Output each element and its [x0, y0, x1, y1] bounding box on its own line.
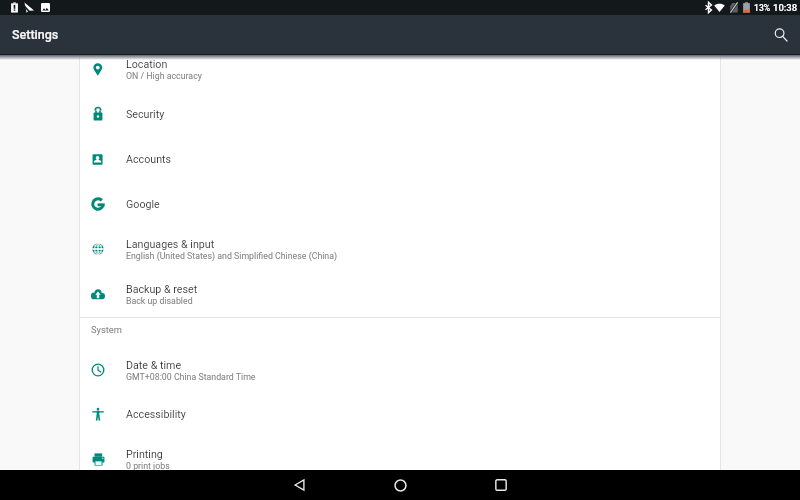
button[interactable]: Printing — [80, 437, 720, 481]
button[interactable]: Security — [80, 92, 720, 136]
staticText: Languages & input — [126, 238, 215, 251]
staticText: ON / High accuracy — [126, 71, 202, 81]
staticText: Backup & reset — [126, 283, 198, 296]
staticText: English (United States) and Simplified C… — [126, 251, 338, 261]
button[interactable]: Recents — [486, 470, 516, 500]
staticText: Google — [126, 198, 160, 211]
staticText: Printing — [126, 448, 163, 461]
staticText: Back up disabled — [126, 296, 193, 306]
button[interactable]: Location — [80, 47, 720, 91]
staticText: Security — [126, 108, 165, 121]
button[interactable]: Search — [765, 20, 795, 50]
staticText: 13% — [754, 3, 771, 13]
staticText: System — [91, 324, 122, 335]
staticText: Date & time — [126, 359, 182, 372]
button[interactable]: Back — [284, 470, 314, 500]
button[interactable]: Home — [385, 470, 415, 500]
button[interactable]: Languages & input — [80, 227, 720, 271]
button[interactable]: Accounts — [80, 137, 720, 181]
staticText: GMT+08:00 China Standard Time — [126, 372, 256, 382]
staticText: 0 print jobs — [126, 461, 170, 471]
button[interactable]: Google — [80, 182, 720, 226]
button[interactable]: Backup & reset — [80, 272, 720, 316]
button[interactable]: Accessibility — [80, 392, 720, 436]
staticText: Accounts — [126, 153, 172, 166]
staticText: Accessibility — [126, 408, 186, 421]
staticText: Settings — [12, 27, 59, 42]
staticText: 10:38 — [773, 2, 798, 13]
button[interactable]: Date & time — [80, 348, 720, 392]
staticText: Location — [126, 58, 168, 71]
